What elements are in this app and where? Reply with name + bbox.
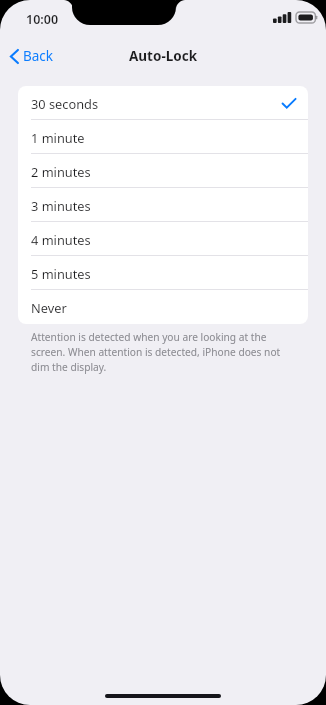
button[interactable]: 5 minutes [18, 256, 308, 290]
button[interactable]: 3 minutes [18, 188, 308, 222]
other: Home indicator [105, 694, 221, 698]
button[interactable]: Back [6, 42, 58, 70]
staticText: Attention is detected when you are looki… [31, 330, 300, 374]
staticText: 3 minutes [31, 197, 91, 214]
staticText: 10:00 [26, 11, 59, 28]
staticText: Auto-Lock [129, 47, 198, 65]
staticText: 4 minutes [31, 231, 91, 248]
button[interactable]: 4 minutes [18, 222, 308, 256]
staticText: 1 minute [31, 129, 85, 146]
staticText: 2 minutes [31, 163, 91, 180]
button[interactable]: 30 seconds [18, 86, 308, 120]
button[interactable]: 1 minute [18, 120, 308, 154]
staticText: Back [23, 47, 54, 65]
staticText: 30 seconds [31, 95, 99, 112]
button[interactable]: Never [18, 290, 308, 324]
button[interactable]: 2 minutes [18, 154, 308, 188]
staticText: Never [31, 299, 67, 316]
staticText: 5 minutes [31, 265, 91, 282]
